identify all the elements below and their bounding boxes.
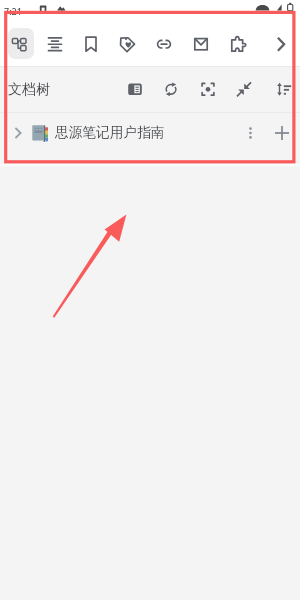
staticText: 思源笔记用户指南	[55, 124, 165, 141]
button[interactable]: Sort	[268, 74, 300, 105]
button[interactable]: Expand	[0, 113, 31, 152]
button[interactable]: Refresh	[154, 74, 188, 105]
button[interactable]: Outline	[38, 28, 72, 59]
button[interactable]: Inbox	[184, 28, 218, 59]
button[interactable]: More panels	[264, 28, 298, 59]
button[interactable]: New document	[264, 113, 300, 152]
button[interactable]: More	[237, 113, 264, 152]
button[interactable]: Layout	[118, 74, 152, 105]
button[interactable]: Tags	[110, 28, 144, 59]
button[interactable]: Collapse all	[227, 74, 261, 105]
button[interactable]: Document tree	[8, 28, 34, 59]
button[interactable]: Expand	[0, 113, 300, 152]
button[interactable]: Backlinks	[147, 28, 181, 59]
staticText: 文档树	[8, 81, 50, 99]
button[interactable]: Bookmark	[74, 28, 108, 59]
button[interactable]: Plugins	[221, 28, 255, 59]
staticText: 7:21	[4, 5, 22, 17]
button[interactable]: Focus	[191, 74, 225, 105]
